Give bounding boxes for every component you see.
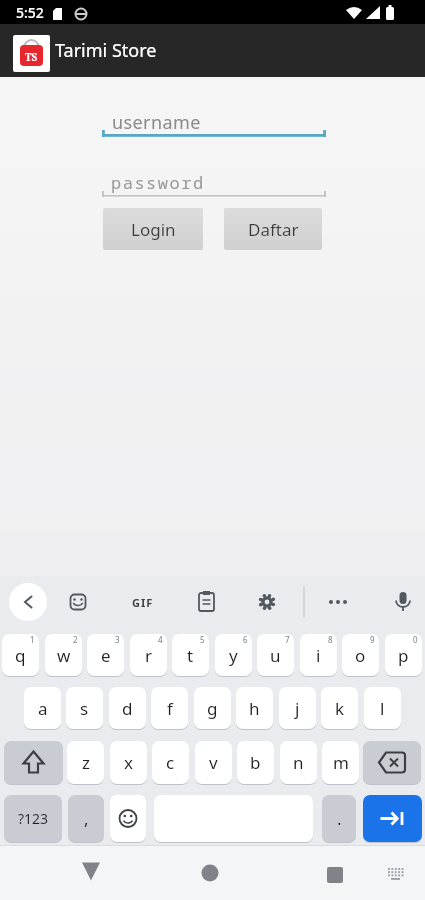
button[interactable]: Login	[103, 208, 203, 250]
button[interactable]	[192, 854, 228, 890]
staticText: p	[398, 644, 409, 667]
button[interactable]: h	[236, 687, 273, 729]
staticText: 1	[30, 634, 35, 645]
staticText: i	[316, 644, 321, 667]
staticText: m	[333, 751, 349, 774]
staticText: o	[355, 644, 366, 667]
button[interactable]: n	[280, 741, 317, 784]
staticText: z	[82, 751, 90, 774]
staticText: 3	[115, 634, 120, 645]
button[interactable]	[389, 588, 417, 616]
button[interactable]	[73, 854, 109, 890]
staticText: t	[187, 644, 194, 667]
staticText: e	[101, 644, 111, 667]
staticText: Login	[131, 218, 176, 241]
button[interactable]: w	[45, 634, 82, 676]
staticText: username	[112, 110, 201, 135]
staticText: f	[167, 697, 173, 720]
staticText: r	[145, 644, 153, 667]
staticText: 7	[285, 634, 290, 645]
button[interactable]: Daftar	[224, 208, 322, 250]
staticText: ,	[84, 807, 89, 830]
button[interactable]	[253, 588, 281, 616]
staticText: k	[335, 697, 345, 720]
button[interactable]: f	[151, 687, 188, 729]
button[interactable]: k	[321, 687, 358, 729]
staticText: TS	[25, 50, 38, 64]
button[interactable]: e	[87, 634, 124, 676]
staticText: w	[57, 644, 71, 667]
button[interactable]	[102, 166, 326, 197]
button[interactable]: s	[66, 687, 103, 729]
staticText: l	[380, 697, 385, 720]
staticText: h	[249, 697, 260, 720]
staticText: 6	[243, 634, 248, 645]
button[interactable]	[363, 795, 422, 842]
button[interactable]	[110, 795, 146, 842]
button[interactable]	[102, 105, 326, 137]
button[interactable]: .	[322, 795, 356, 842]
button[interactable]: z	[67, 741, 104, 784]
staticText: Daftar	[248, 218, 299, 241]
button[interactable]: y	[215, 634, 252, 676]
button[interactable]	[4, 741, 63, 784]
button[interactable]: c	[152, 741, 189, 784]
button[interactable]: d	[109, 687, 146, 729]
button[interactable]	[64, 588, 92, 616]
button[interactable]	[9, 583, 47, 621]
button[interactable]: m	[322, 741, 359, 784]
button[interactable]	[324, 588, 352, 616]
staticText: s	[80, 697, 89, 720]
staticText: g	[207, 697, 218, 720]
staticText: 0	[413, 634, 418, 645]
button[interactable]: b	[237, 741, 274, 784]
button[interactable]: x	[110, 741, 147, 784]
staticText: d	[122, 697, 133, 720]
button[interactable]: i	[300, 634, 337, 676]
staticText: ?123	[18, 809, 49, 828]
staticText: n	[293, 751, 304, 774]
button[interactable]: ,	[68, 795, 104, 842]
button[interactable]: a	[24, 687, 61, 729]
staticText: a	[38, 697, 48, 720]
button[interactable]: p	[385, 634, 422, 676]
button[interactable]: q	[2, 634, 39, 676]
staticText: 5:52	[16, 3, 44, 22]
button[interactable]: u	[257, 634, 294, 676]
staticText: .	[337, 807, 342, 830]
button[interactable]: g	[194, 687, 231, 729]
staticText: u	[270, 644, 281, 667]
staticText: password	[111, 171, 205, 194]
staticText: j	[295, 697, 300, 720]
button[interactable]: o	[342, 634, 379, 676]
button[interactable]	[128, 588, 158, 616]
button[interactable]: j	[279, 687, 316, 729]
button[interactable]: ?123	[4, 795, 62, 842]
staticText: GIF	[132, 595, 154, 610]
staticText: 5	[200, 634, 205, 645]
button[interactable]	[317, 854, 353, 890]
staticText: b	[250, 751, 261, 774]
staticText: 9	[370, 634, 375, 645]
button[interactable]	[383, 858, 409, 884]
button[interactable]: r	[130, 634, 167, 676]
staticText: 2	[73, 634, 78, 645]
button[interactable]: l	[364, 687, 401, 729]
staticText: Tarimi Store	[55, 38, 157, 63]
button[interactable]: t	[172, 634, 209, 676]
button[interactable]: v	[195, 741, 232, 784]
staticText: 8	[328, 634, 333, 645]
staticText: c	[166, 751, 175, 774]
button[interactable]	[363, 741, 421, 784]
staticText: y	[229, 644, 238, 667]
staticText: 4	[158, 634, 163, 645]
staticText: q	[15, 644, 26, 667]
button[interactable]	[192, 588, 220, 616]
staticText: x	[124, 751, 133, 774]
staticText: v	[209, 751, 218, 774]
